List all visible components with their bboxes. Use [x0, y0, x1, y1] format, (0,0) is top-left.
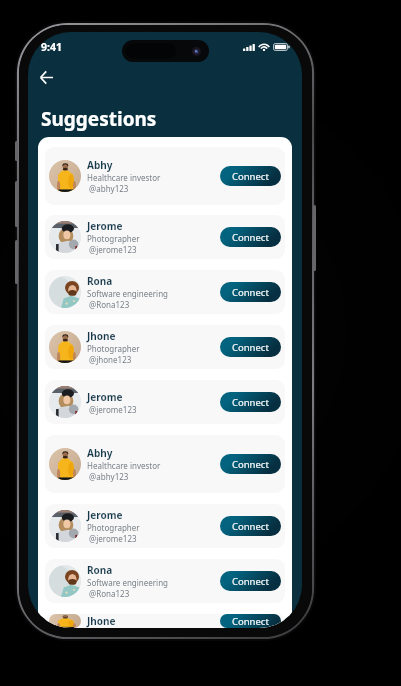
staticText: @jhone123: [87, 354, 132, 365]
staticText: Jerome: [87, 508, 123, 522]
staticText: @abhy123: [87, 183, 129, 194]
button[interactable]: Jhone: [45, 614, 285, 628]
staticText: Photographer: [87, 343, 140, 354]
button[interactable]: Connect: [220, 227, 281, 247]
staticText: @Rona123: [87, 299, 130, 310]
staticText: Rona: [87, 563, 113, 577]
staticText: Connect: [232, 458, 269, 471]
staticText: Abhy: [87, 446, 113, 460]
staticText: Jhone: [87, 614, 116, 628]
staticText: Jerome: [87, 390, 123, 404]
button[interactable]: Abhy: [45, 435, 285, 493]
staticText: Connect: [232, 520, 269, 533]
staticText: Jhone: [87, 329, 116, 343]
staticText: Connect: [232, 615, 269, 628]
button[interactable]: Jerome: [45, 380, 285, 424]
staticText: @jerome123: [87, 404, 137, 415]
staticText: @Rona123: [87, 588, 130, 599]
button[interactable]: Connect: [220, 614, 281, 628]
staticText: Healthcare investor: [87, 460, 161, 471]
button[interactable]: Connect: [220, 392, 281, 412]
staticText: Photographer: [87, 233, 140, 244]
staticText: @abhy123: [87, 471, 129, 482]
staticText: Connect: [232, 170, 269, 183]
staticText: Connect: [232, 341, 269, 354]
staticText: Healthcare investor: [87, 172, 161, 183]
staticText: Rona: [87, 274, 113, 288]
staticText: Software engineering: [87, 288, 169, 299]
button[interactable]: Connect: [220, 516, 281, 536]
staticText: Jerome: [87, 219, 123, 233]
staticText: @jerome123: [87, 533, 137, 544]
staticText: Connect: [232, 575, 269, 588]
staticText: Connect: [232, 286, 269, 299]
button[interactable]: Abhy: [45, 147, 285, 205]
staticText: Abhy: [87, 158, 113, 172]
button[interactable]: Jhone: [45, 325, 285, 369]
button[interactable]: Back: [31, 62, 61, 92]
button[interactable]: Connect: [220, 166, 281, 186]
staticText: Suggestions: [41, 106, 157, 132]
button[interactable]: Rona: [45, 270, 285, 314]
staticText: Connect: [232, 396, 269, 409]
button[interactable]: Rona: [45, 559, 285, 603]
staticText: 9:41: [41, 40, 62, 54]
staticText: Software engineering: [87, 577, 169, 588]
button[interactable]: Connect: [220, 282, 281, 302]
button[interactable]: Connect: [220, 454, 281, 474]
button[interactable]: Jerome: [45, 504, 285, 548]
staticText: Photographer: [87, 522, 140, 533]
staticText: Connect: [232, 231, 269, 244]
button[interactable]: Connect: [220, 337, 281, 357]
button[interactable]: Jerome: [45, 215, 285, 259]
button[interactable]: Connect: [220, 571, 281, 591]
staticText: @jerome123: [87, 244, 137, 255]
